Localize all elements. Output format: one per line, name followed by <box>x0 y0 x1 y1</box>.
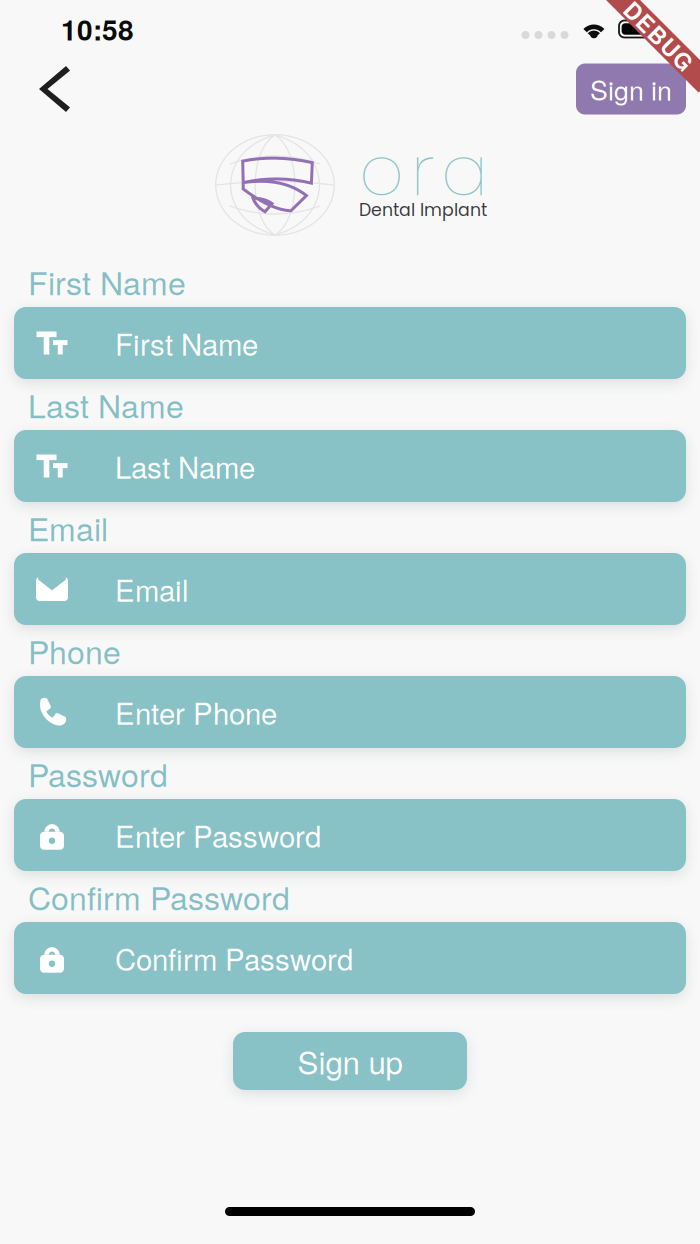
button[interactable]: Enter Phone <box>0 676 700 748</box>
staticText: Confirm Password <box>115 937 353 979</box>
staticText: ora <box>359 122 488 220</box>
staticText: Email <box>28 505 108 550</box>
button[interactable]: First Name <box>0 307 700 379</box>
staticText: First Name <box>28 259 186 304</box>
button[interactable]: Last Name <box>0 430 700 502</box>
button[interactable]: Back <box>0 59 98 119</box>
button[interactable]: Enter Password <box>0 799 700 871</box>
staticText: Last Name <box>28 382 184 427</box>
staticText: Enter Password <box>115 814 321 856</box>
button[interactable]: Sign in <box>576 63 686 114</box>
staticText: Last Name <box>115 445 255 487</box>
staticText: Sign up <box>297 1039 402 1083</box>
staticText: Password <box>28 751 168 796</box>
staticText: 10:58 <box>61 9 134 49</box>
staticText: Email <box>115 568 189 610</box>
staticText: Confirm Password <box>28 874 290 919</box>
staticText: First Name <box>115 322 258 364</box>
staticText: Dental Implant <box>359 198 487 222</box>
staticText: Enter Phone <box>115 691 277 733</box>
button[interactable]: Sign up <box>233 1032 467 1090</box>
button[interactable]: Confirm Password <box>0 922 700 994</box>
staticText: Sign in <box>590 70 672 108</box>
staticText: Phone <box>28 628 121 673</box>
button[interactable]: Email <box>0 553 700 625</box>
staticText: DEBUG <box>615 20 700 52</box>
